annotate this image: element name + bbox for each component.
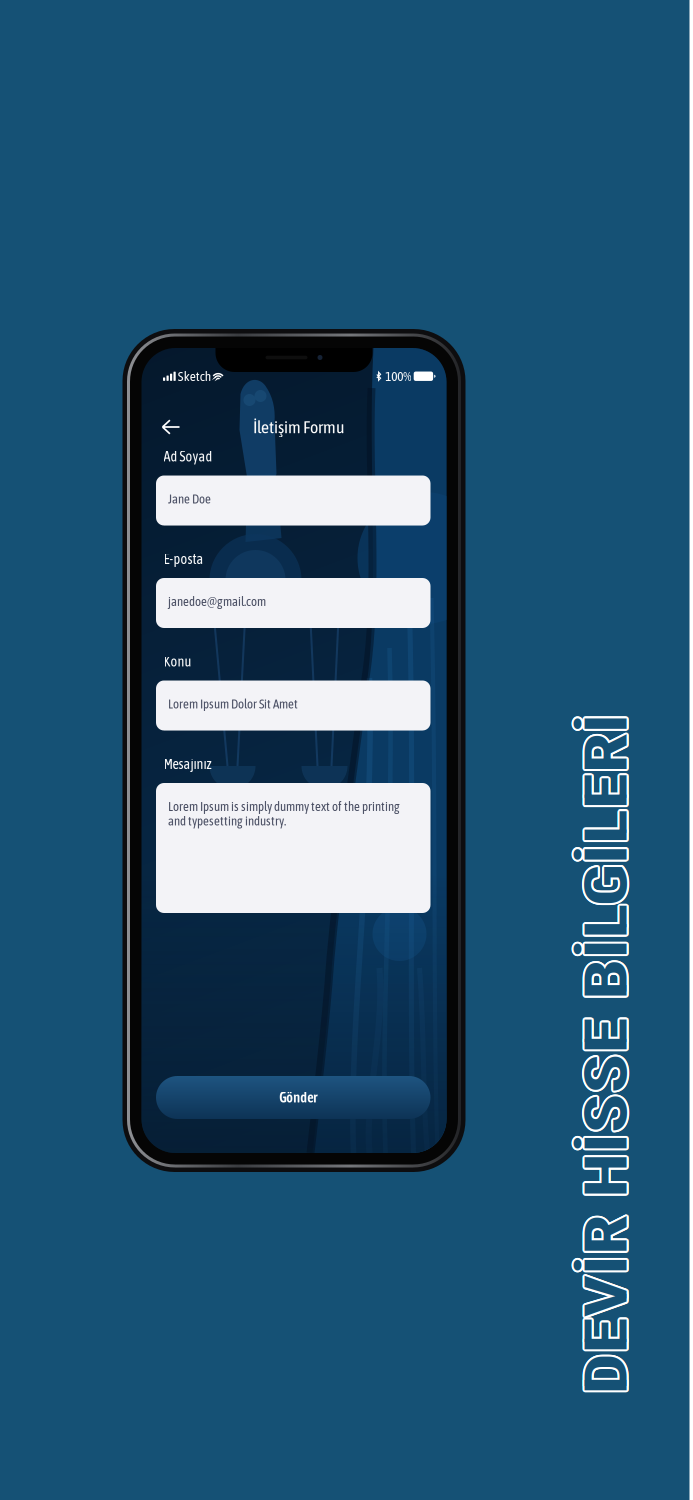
staticText: janedoe@gmail.com — [168, 594, 266, 609]
staticText: DEVİR HİSSE BİLGİLERİ — [331, 1020, 693, 1088]
staticText: DEVİR HİSSE BİLGİLERİ — [333, 1018, 693, 1086]
staticText: Konu — [163, 653, 191, 670]
staticText: İletişim Formu — [253, 417, 345, 437]
staticText: DEVİR HİSSE BİLGİLERİ — [332, 1021, 693, 1090]
staticText: DEVİR HİSSE BİLGİLERİ — [334, 1018, 693, 1087]
staticText: DEVİR HİSSE BİLGİLERİ — [334, 1021, 693, 1090]
staticText: Sketch — [178, 369, 211, 384]
button[interactable]: Back — [155, 414, 186, 440]
staticText: Jane Doe — [168, 491, 211, 506]
staticText: DEVİR HİSSE BİLGİLERİ — [331, 1019, 693, 1088]
staticText: Lorem Ipsum is simply dummy text of the … — [168, 799, 400, 828]
staticText: DEVİR HİSSE BİLGİLERİ — [334, 1021, 693, 1090]
staticText: Gönder — [279, 1089, 317, 1106]
staticText: DEVİR HİSSE BİLGİLERİ — [333, 1020, 693, 1088]
staticText: DEVİR HİSSE BİLGİLERİ — [335, 1020, 693, 1089]
staticText: Ad Soyad — [163, 448, 212, 465]
staticText: DEVİR HİSSE BİLGİLERİ — [335, 1019, 693, 1088]
staticText: DEVİR HİSSE BİLGİLERİ — [334, 1018, 693, 1087]
button[interactable]: Gönder — [156, 1076, 430, 1119]
staticText: DEVİR HİSSE BİLGİLERİ — [335, 1020, 693, 1088]
staticText: DEVİR HİSSE BİLGİLERİ — [332, 1021, 693, 1090]
staticText: DEVİR HİSSE BİLGİLERİ — [333, 1022, 693, 1090]
staticText: DEVİR HİSSE BİLGİLERİ — [331, 1020, 693, 1089]
staticText: DEVİR HİSSE BİLGİLERİ — [332, 1018, 693, 1087]
staticText: E-posta — [163, 551, 203, 567]
staticText: Mesajınız — [163, 756, 211, 772]
staticText: 100% — [385, 369, 411, 384]
staticText: DEVİR HİSSE BİLGİLERİ — [332, 1018, 693, 1087]
staticText: Lorem Ipsum Dolor Sit Amet — [168, 696, 298, 711]
